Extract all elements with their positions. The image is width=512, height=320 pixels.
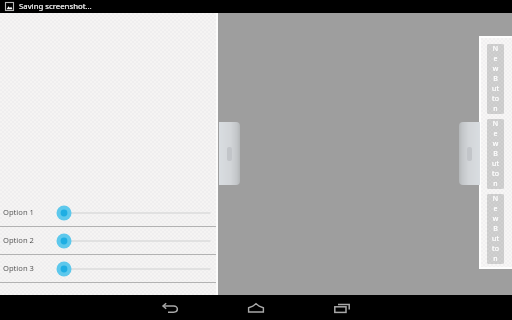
staticText: Option 1 bbox=[3, 207, 34, 217]
staticText: Option 2 bbox=[3, 235, 34, 245]
button[interactable]: Option 3 bbox=[0, 255, 218, 283]
button[interactable]: Recent apps bbox=[332, 298, 352, 318]
button[interactable]: N e w B ut to n bbox=[487, 194, 504, 264]
button[interactable]: Open right drawer bbox=[459, 122, 480, 185]
staticText: Saving screenshot… bbox=[19, 1, 92, 12]
button[interactable]: Open left drawer bbox=[219, 122, 240, 185]
button[interactable]: Option 2 bbox=[0, 227, 218, 255]
staticText: N e w B ut to n bbox=[492, 44, 499, 114]
button[interactable]: Back bbox=[160, 298, 180, 318]
staticText: Option 3 bbox=[3, 263, 34, 273]
button[interactable]: N e w B ut to n bbox=[487, 44, 504, 114]
staticText: N e w B ut to n bbox=[492, 194, 499, 264]
button[interactable]: Home bbox=[246, 298, 266, 318]
button[interactable]: N e w B ut to n bbox=[487, 119, 504, 189]
staticText: N e w B ut to n bbox=[492, 119, 499, 189]
button[interactable]: Option 1 bbox=[0, 199, 218, 227]
